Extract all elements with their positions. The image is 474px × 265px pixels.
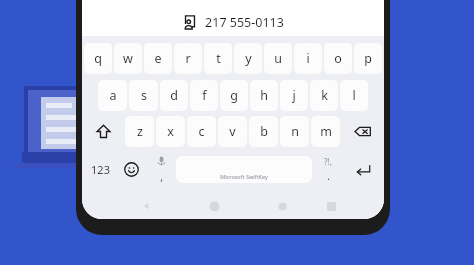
staticText: b [260,123,268,140]
button[interactable]: Microsoft SwiftKey [176,156,312,183]
button[interactable]: n [280,116,309,147]
button[interactable]: t [204,43,232,74]
staticText: m [320,123,332,140]
staticText: g [230,87,238,104]
staticText: . [327,169,330,183]
staticText: Microsoft SwiftKey [220,173,268,180]
button[interactable]: a [98,80,127,111]
staticText: f [202,87,207,104]
button[interactable]: e [144,43,172,74]
staticText: e [154,50,162,67]
button[interactable]: v [218,116,247,147]
staticText: , [160,170,163,184]
staticText: z [137,123,143,140]
button[interactable]: Backspace [342,116,382,147]
button[interactable]: Contact [82,8,384,36]
button[interactable]: Emoji [116,153,146,186]
button[interactable]: 123 [84,153,116,186]
staticText: 217 555-0113 [205,14,284,31]
staticText: q [94,50,102,67]
button[interactable]: Shift [84,116,123,147]
staticText: n [291,123,299,140]
staticText: u [274,50,282,67]
other: Contact [182,14,198,30]
staticText: k [321,87,328,104]
button[interactable]: Enter [344,153,382,186]
button[interactable]: f [190,80,218,111]
staticText: i [306,50,310,67]
staticText: d [170,87,178,104]
button[interactable]: l [340,80,368,111]
button[interactable]: g [220,80,248,111]
staticText: r [185,50,191,67]
button[interactable]: h [250,80,278,111]
button[interactable]: w [114,43,142,74]
button[interactable]: Voice input [146,153,176,186]
staticText: h [260,87,268,104]
staticText: x [167,123,174,140]
button[interactable]: r [174,43,202,74]
button[interactable]: c [187,116,216,147]
staticText: v [229,123,236,140]
staticText: p [364,50,372,67]
staticText: s [141,87,147,104]
staticText: a [109,87,117,104]
button[interactable]: m [311,116,340,147]
button[interactable]: o [324,43,352,74]
button[interactable]: s [129,80,158,111]
staticText: 123 [91,162,110,177]
staticText: l [352,87,356,104]
staticText: t [216,50,221,67]
staticText: ?!, [324,156,332,167]
staticText: j [292,87,296,104]
staticText: o [334,50,342,67]
button[interactable]: Recent apps [312,193,350,219]
button[interactable]: k [310,80,338,111]
staticText: y [245,50,252,67]
button[interactable]: Assistant [263,193,301,219]
button[interactable]: ?!, [312,153,344,186]
button[interactable]: z [125,116,154,147]
button[interactable]: q [84,43,112,74]
button[interactable]: y [234,43,262,74]
button[interactable]: j [280,80,308,111]
button[interactable]: u [264,43,292,74]
staticText: c [198,123,205,140]
button[interactable]: d [160,80,188,111]
button[interactable]: p [354,43,382,74]
staticText: w [123,50,133,67]
button[interactable]: x [156,116,185,147]
button[interactable]: Home [195,193,233,219]
button[interactable]: i [294,43,322,74]
button[interactable]: b [249,116,278,147]
